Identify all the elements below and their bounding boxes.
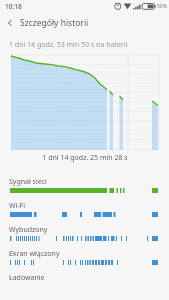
button[interactable]: Ładowanie (0, 273, 169, 295)
staticText: 10:18 (5, 2, 22, 11)
staticText: 1 dni 14 godz. 25 min 28 s (42, 153, 128, 163)
staticText: 50% (157, 3, 167, 10)
staticText: Ekran włączony (9, 249, 60, 259)
staticText: Ładowanie (9, 273, 45, 283)
staticText: Sygnał sieci (9, 177, 47, 187)
button[interactable]: Wi-Fi (0, 201, 169, 223)
staticText: 1 dni 14 godz. 53 min 50 s na baterii (9, 40, 128, 50)
button[interactable]: Sygnał sieci (0, 177, 169, 199)
button[interactable]: Ekran włączony (0, 249, 169, 271)
button[interactable]: Back (0, 13, 20, 33)
staticText: Szczegóły historii (20, 17, 89, 29)
staticText: Wybudzony (9, 225, 48, 235)
staticText: Wi-Fi (9, 201, 26, 211)
button[interactable]: Wybudzony (0, 225, 169, 247)
